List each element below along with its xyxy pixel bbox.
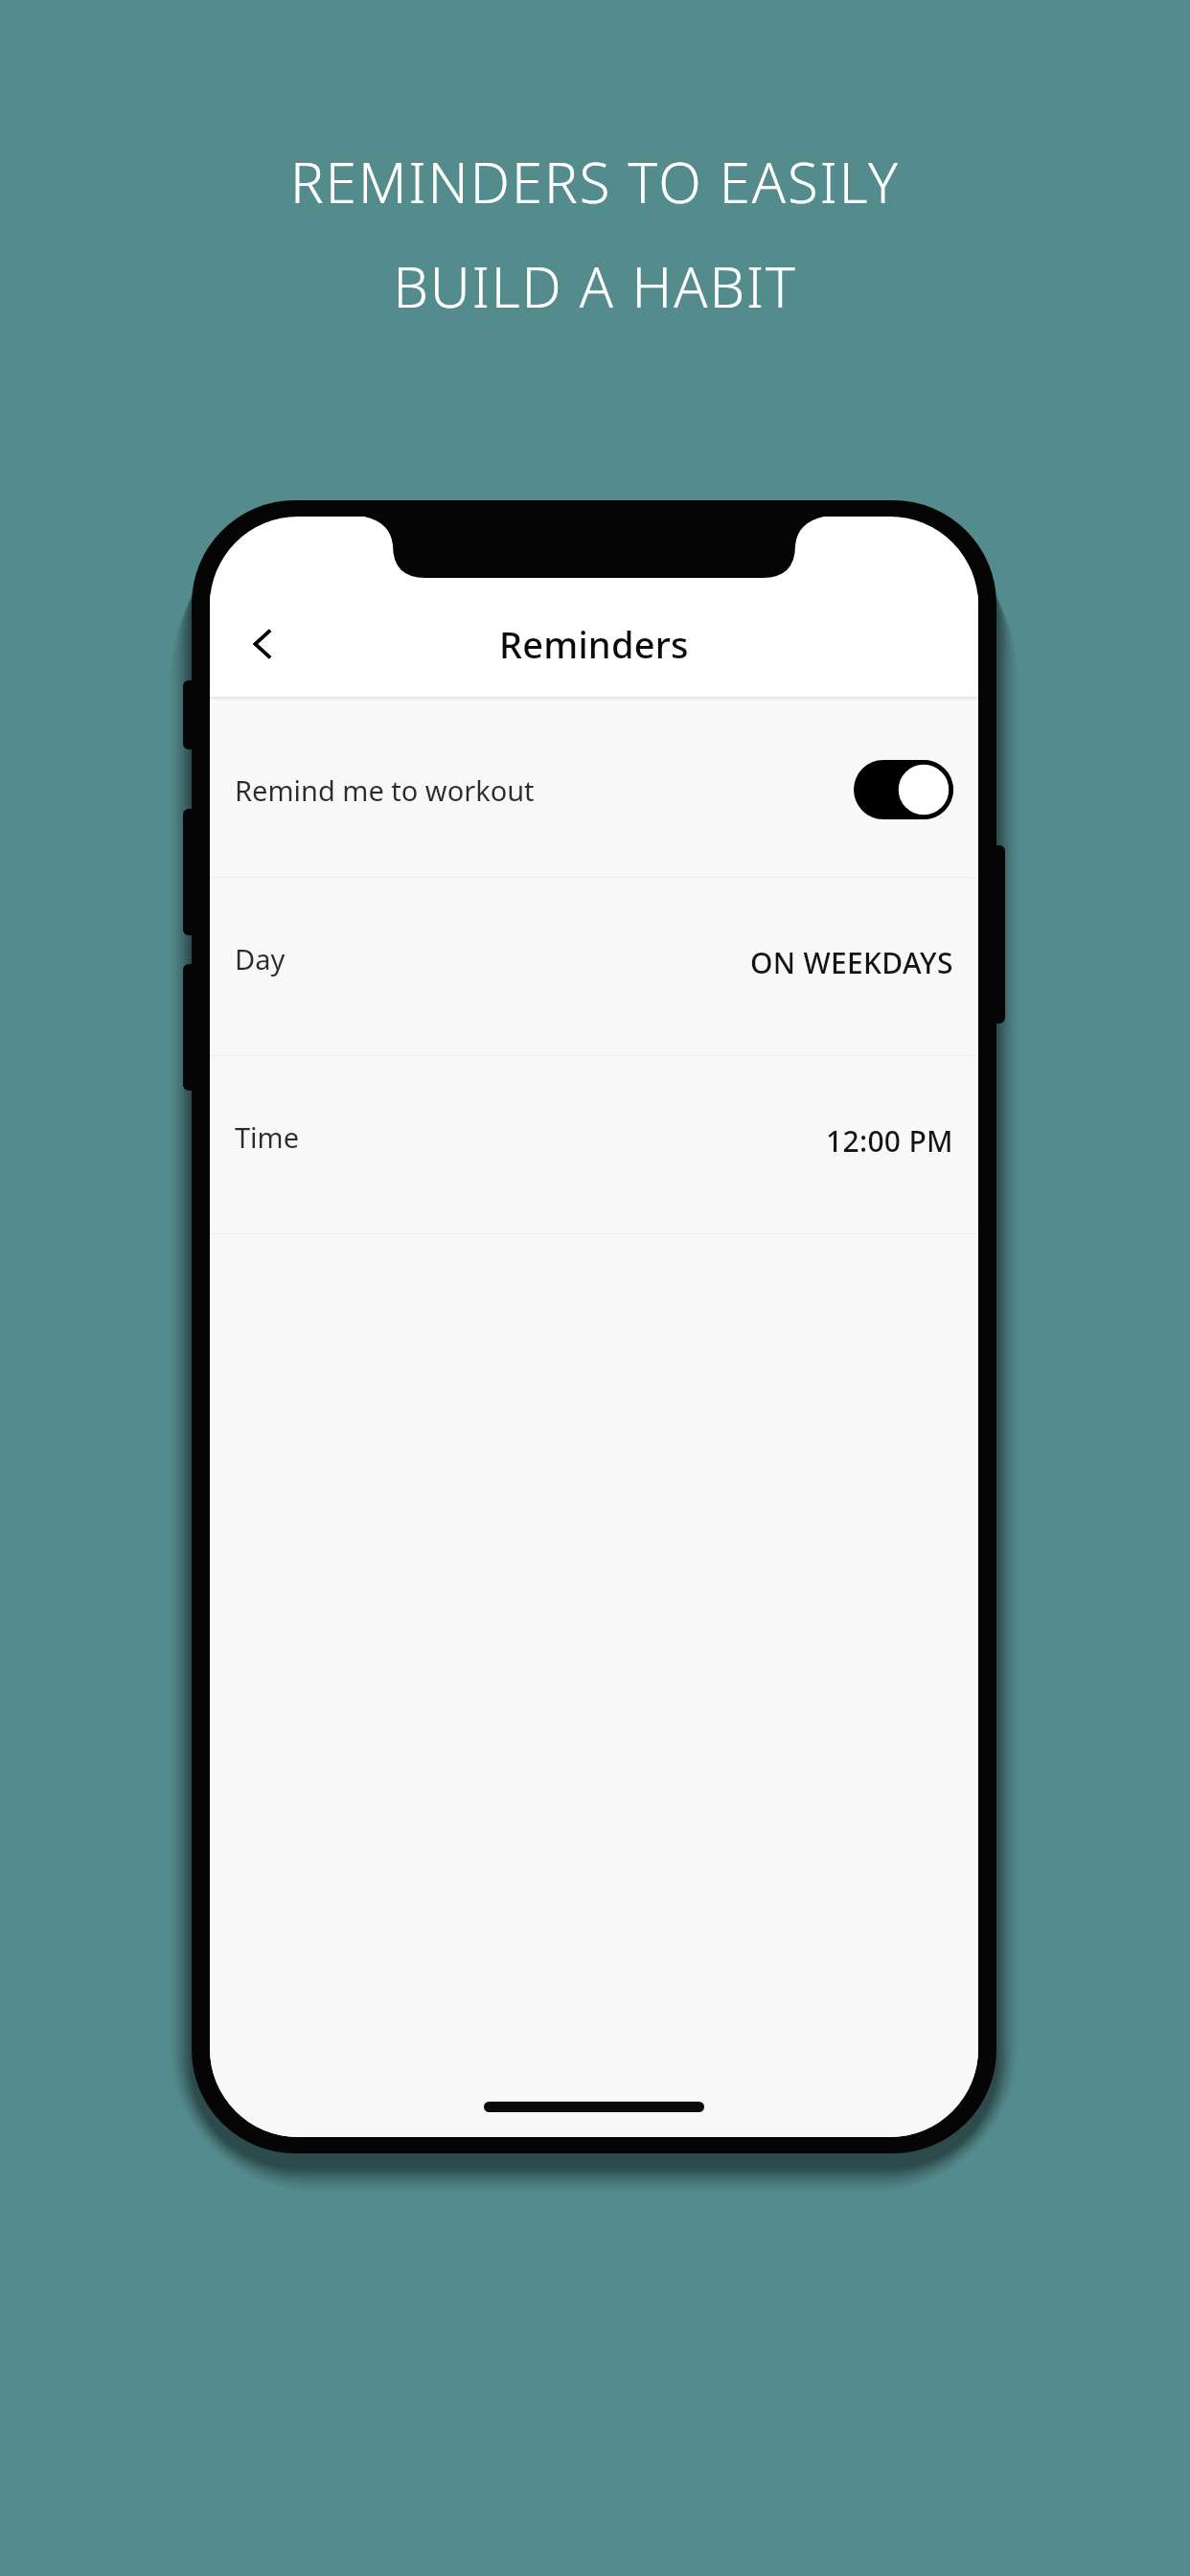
staticText: Reminders bbox=[499, 619, 689, 669]
button[interactable]: Back bbox=[223, 604, 304, 684]
staticText: Day bbox=[235, 940, 286, 977]
staticText: BUILD A HABIT bbox=[393, 248, 797, 324]
staticText: ON WEEKDAYS bbox=[750, 943, 953, 982]
staticText: Remind me to workout bbox=[235, 771, 535, 809]
staticText: 12:00 PM bbox=[826, 1121, 953, 1161]
staticText: REMINDERS TO EASILY bbox=[290, 144, 900, 219]
button[interactable]: Day bbox=[210, 878, 978, 1055]
button[interactable]: Time bbox=[210, 1056, 978, 1233]
button[interactable]: Remind me to workout bbox=[210, 702, 978, 877]
staticText: Time bbox=[235, 1118, 300, 1156]
button[interactable]: Remind me to workout toggle, on bbox=[854, 760, 953, 819]
